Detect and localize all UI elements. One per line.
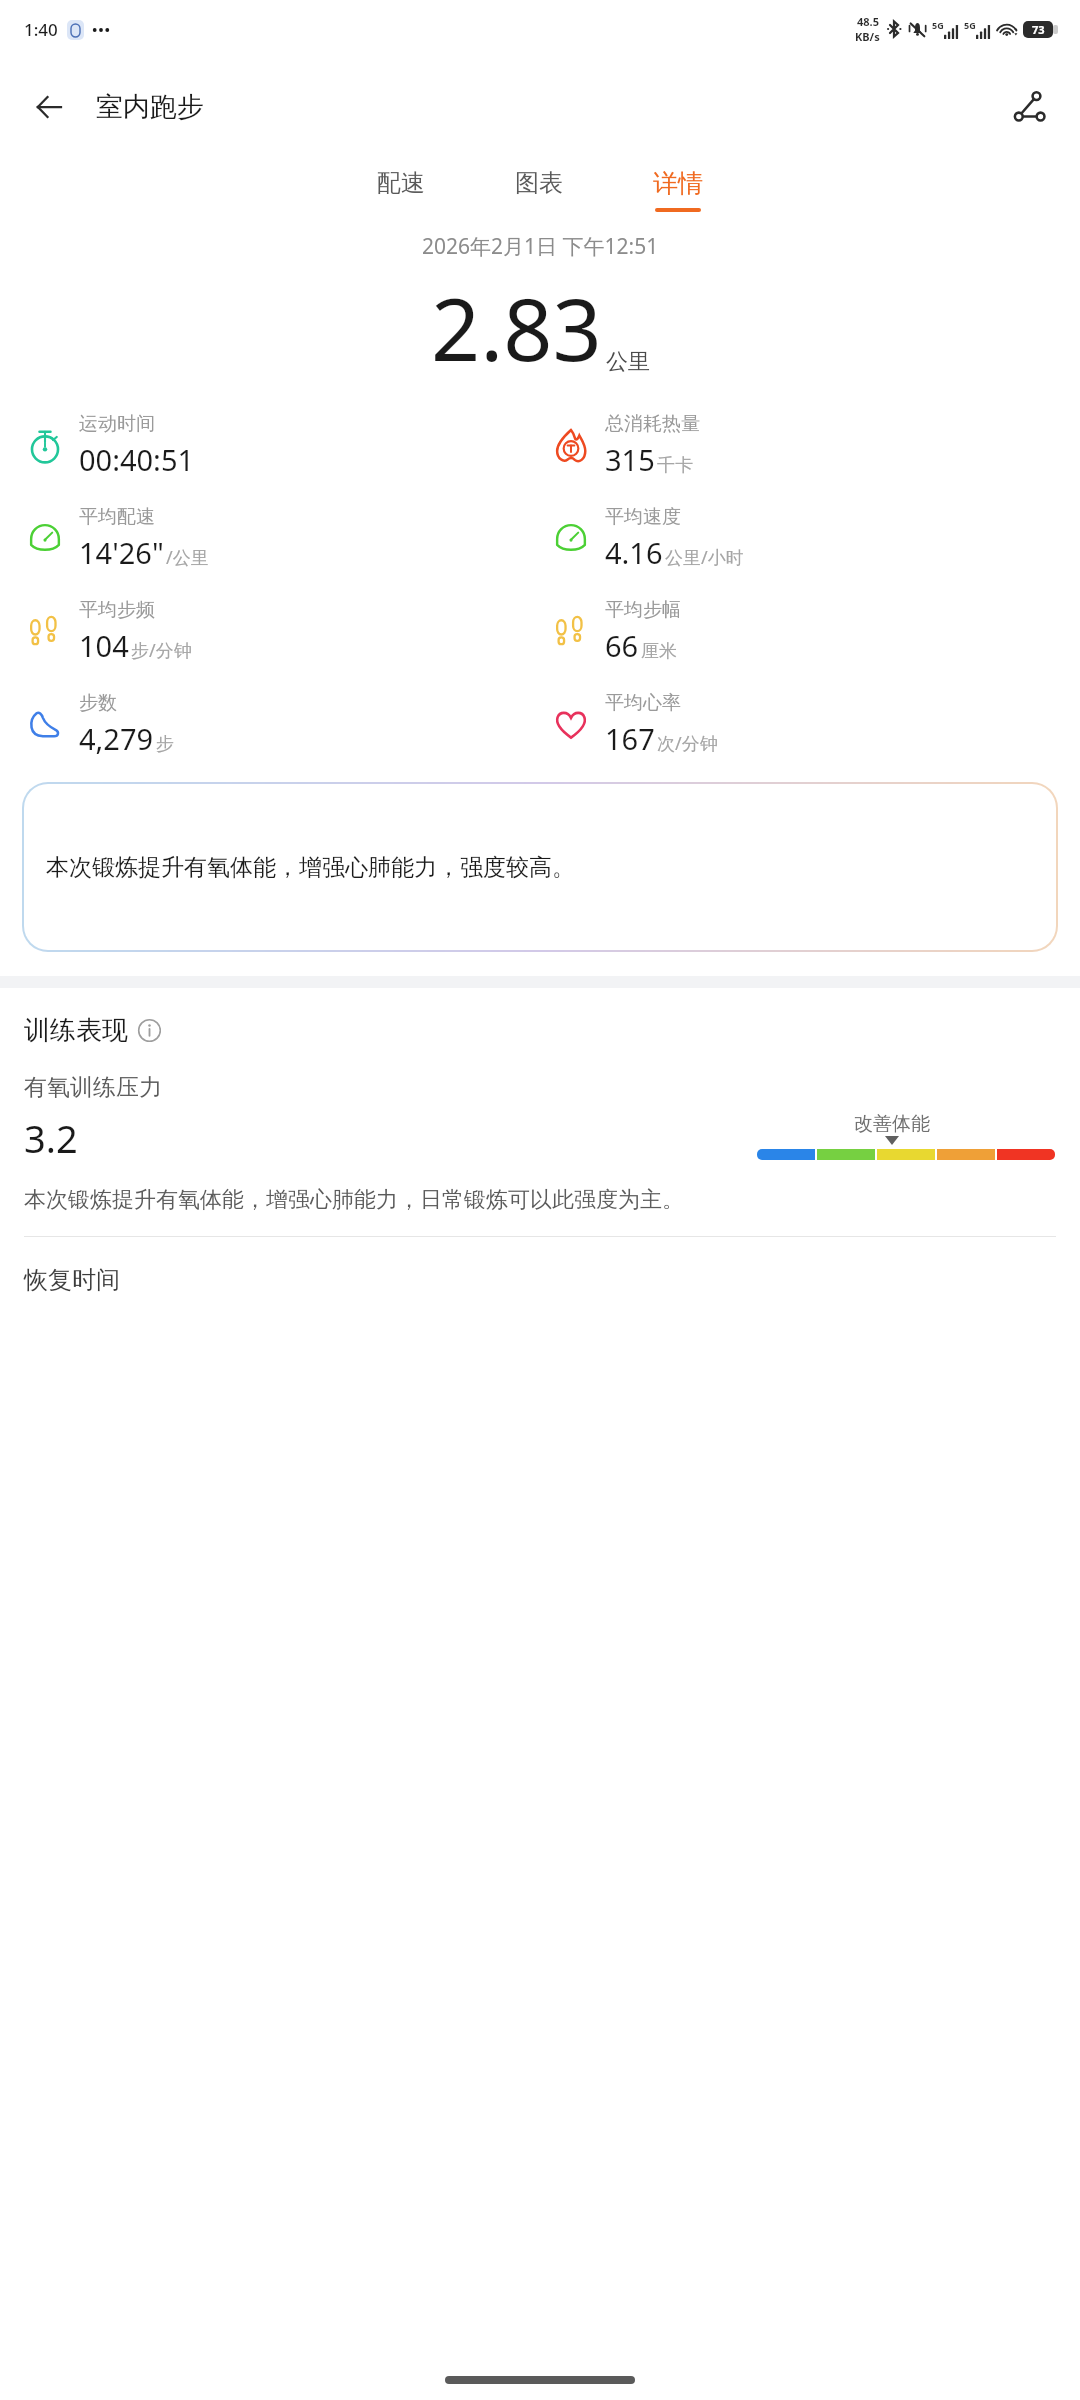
staticText: 5G	[932, 19, 944, 31]
staticText: 图表	[515, 168, 563, 198]
staticText: 改善体能	[854, 1112, 930, 1136]
staticText: 3.2	[24, 1112, 78, 1164]
other: Info	[138, 1019, 161, 1042]
button[interactable]: Back	[18, 76, 80, 138]
button[interactable]: 详情	[643, 162, 713, 218]
staticText: 167	[605, 719, 655, 758]
staticText: 2.83	[431, 269, 602, 386]
staticText: 平均心率	[605, 691, 681, 715]
staticText: 千卡	[657, 454, 693, 477]
staticText: 平均步频	[79, 598, 155, 622]
staticText: 有氧训练压力	[24, 1073, 162, 1102]
staticText: 平均步幅	[605, 598, 681, 622]
button[interactable]: 运动时间	[24, 410, 540, 481]
staticText: KB/s	[855, 29, 880, 44]
staticText: 4,279	[79, 719, 154, 758]
staticText: 厘米	[641, 640, 677, 663]
staticText: 详情	[653, 168, 703, 199]
staticText: 次/分钟	[657, 731, 718, 756]
button[interactable]: 总消耗热量	[550, 410, 1080, 481]
staticText: 00:40:51	[79, 440, 195, 479]
staticText: 恢复时间	[24, 1265, 120, 1295]
button[interactable]: 配速	[367, 162, 435, 217]
staticText: 104	[79, 626, 129, 665]
staticText: 平均速度	[605, 505, 681, 529]
button[interactable]: 训练表现	[24, 1014, 161, 1047]
button[interactable]: 平均步幅	[550, 596, 1080, 667]
staticText: 公里/小时	[665, 545, 744, 570]
staticText: /公里	[166, 545, 209, 570]
button[interactable]: 步数	[24, 689, 540, 760]
button[interactable]: Share	[998, 76, 1060, 138]
staticText: 本次锻炼提升有氧体能，增强心肺能力，强度较高。	[46, 853, 575, 882]
staticText: 315	[605, 440, 655, 479]
staticText: 66	[605, 626, 639, 665]
staticText: 1:40	[24, 18, 58, 41]
staticText: 训练表现	[24, 1014, 128, 1047]
staticText: 2026年2月1日 下午12:51	[422, 232, 659, 261]
staticText: 步/分钟	[131, 638, 192, 663]
staticText: 步	[156, 733, 174, 756]
button[interactable]: 本次锻炼提升有氧体能，增强心肺能力，强度较高。	[24, 784, 1056, 950]
button[interactable]: 平均心率	[550, 689, 1080, 760]
button[interactable]: 平均步频	[24, 596, 540, 667]
staticText: 5G	[964, 19, 976, 31]
staticText: 步数	[79, 691, 117, 715]
staticText: 运动时间	[79, 412, 155, 436]
button[interactable]: 平均速度	[550, 503, 1080, 574]
button[interactable]: 平均配速	[24, 503, 540, 574]
staticText: 总消耗热量	[605, 412, 700, 436]
staticText: 48.5	[857, 14, 879, 29]
staticText: 室内跑步	[96, 90, 204, 124]
button[interactable]: 图表	[505, 162, 573, 217]
staticText: 73	[1032, 22, 1045, 37]
staticText: 配速	[377, 168, 425, 198]
staticText: 本次锻炼提升有氧体能，增强心肺能力，日常锻炼可以此强度为主。	[24, 1186, 684, 1214]
staticText: 平均配速	[79, 505, 155, 529]
staticText: 14'26"	[79, 533, 164, 572]
staticText: 4.16	[605, 533, 663, 572]
staticText: 公里	[606, 348, 650, 376]
